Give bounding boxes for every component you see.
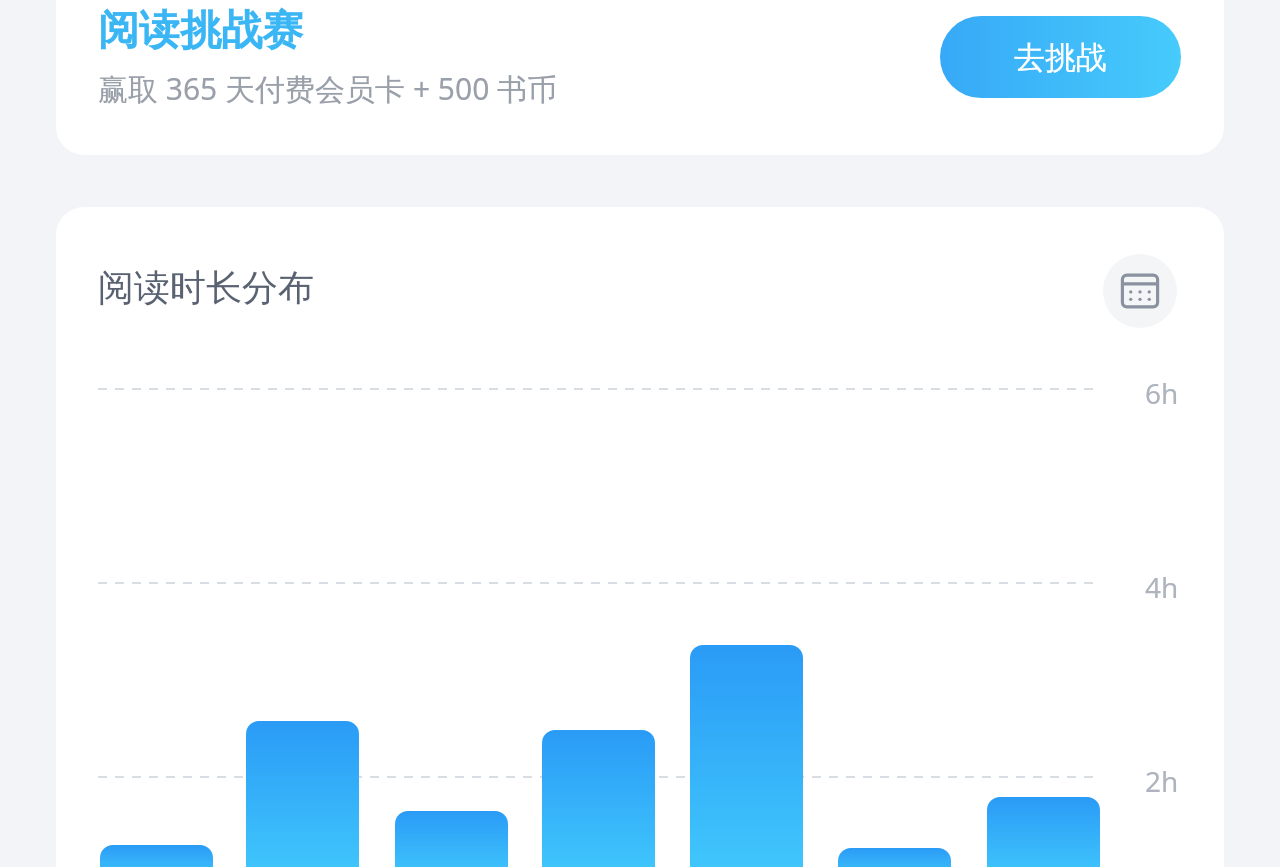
staticText: 6h — [1145, 374, 1179, 412]
staticText: 4h — [1145, 568, 1179, 606]
staticText: 去挑战 — [1014, 38, 1107, 77]
staticText: 2h — [1145, 762, 1179, 800]
button[interactable]: Select date range — [1103, 254, 1177, 328]
staticText: 阅读时长分布 — [98, 265, 314, 310]
staticText: 赢取 365 天付费会员卡 + 500 书币 — [98, 68, 558, 109]
staticText: 阅读挑战赛 — [98, 5, 303, 57]
button[interactable]: 去挑战 — [940, 16, 1181, 98]
